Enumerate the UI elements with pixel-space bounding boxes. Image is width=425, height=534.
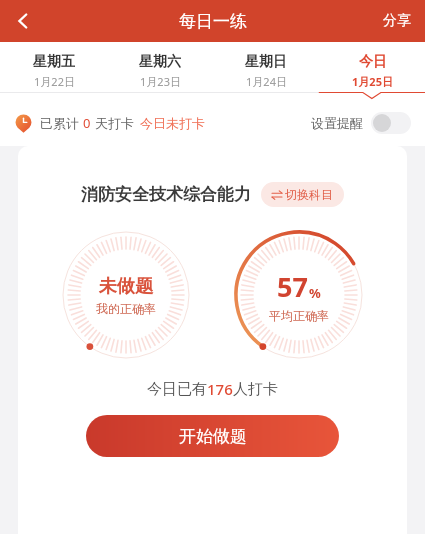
staticText: 1月22日 <box>34 74 75 89</box>
button[interactable]: 今日 <box>319 42 425 100</box>
staticText: 1月25日 <box>352 74 393 89</box>
button[interactable]: 分享 <box>369 0 425 42</box>
staticText: 星期六 <box>139 53 181 71</box>
button[interactable]: 星期六 <box>107 42 213 100</box>
staticText: 1月23日 <box>140 74 181 89</box>
staticText: 星期五 <box>33 53 75 71</box>
staticText: 天打卡 <box>95 115 134 131</box>
button[interactable]: 设置提醒 <box>311 112 411 134</box>
button[interactable]: 星期日 <box>213 42 319 100</box>
button[interactable]: 星期五 <box>0 42 107 100</box>
button[interactable]: 切换科目 <box>261 182 344 207</box>
staticText: 切换科目 <box>285 187 333 202</box>
staticText: 分享 <box>383 12 411 30</box>
staticText: 今日 <box>359 53 387 71</box>
staticText: 星期日 <box>245 53 287 71</box>
staticText: 人打卡 <box>233 380 278 399</box>
staticText: 消防安全技术综合能力 <box>81 184 251 205</box>
staticText: 我的正确率 <box>96 301 156 316</box>
staticText: 0 <box>83 114 91 132</box>
staticText: 今日未打卡 <box>140 115 205 131</box>
staticText: % <box>309 284 321 302</box>
button[interactable]: 开始做题 <box>86 415 339 457</box>
staticText: 开始做题 <box>179 426 247 447</box>
staticText: 57 <box>277 268 308 305</box>
staticText: 设置提醒 <box>311 115 363 131</box>
staticText: 未做题 <box>99 275 153 298</box>
staticText: 今日已有 <box>147 380 207 399</box>
staticText: 已累计 <box>40 115 79 131</box>
staticText: 每日一练 <box>179 11 247 32</box>
button[interactable]: Back <box>0 0 46 42</box>
staticText: 平均正确率 <box>269 308 329 323</box>
staticText: 176 <box>207 379 233 399</box>
staticText: 1月24日 <box>246 74 287 89</box>
